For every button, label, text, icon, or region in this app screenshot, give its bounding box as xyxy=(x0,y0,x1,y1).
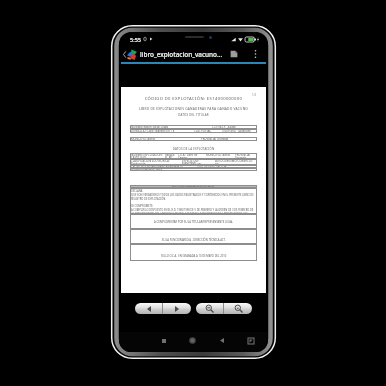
staticText: C.I.F./N.I.F. 44088 xyxy=(212,125,236,129)
button[interactable]: Home xyxy=(187,335,198,346)
button[interactable]: Recents xyxy=(158,335,169,346)
button[interactable]: Previous page xyxy=(135,303,162,314)
staticText: PROVINCIA: Granada xyxy=(201,137,229,141)
button[interactable]: More options xyxy=(244,47,267,61)
staticText: TELÉFONO 44880088 xyxy=(222,129,251,133)
staticText: SE COMPROMETE: xyxy=(131,204,154,208)
staticText: DATOS DEL TITULAR xyxy=(130,113,257,117)
staticText: PROVINCIA: Granada xyxy=(235,153,256,159)
button[interactable]: Back xyxy=(121,47,127,61)
staticText: COD. POSTAL 18640 xyxy=(194,129,220,133)
button[interactable]: Zoom out xyxy=(196,303,223,314)
staticText: PARAJE: EL RE xyxy=(165,153,175,159)
staticText: SELLO O.C.A. EN GRANADA A 10 DE MAYO DEL… xyxy=(161,254,227,258)
button[interactable]: Hide keyboard xyxy=(245,335,256,346)
staticText: TIPO DE EXPLOTACIÓN xyxy=(197,165,227,168)
staticText: A CUMPLIR LO DISPUESTO EN EL R.D. 1980/1… xyxy=(131,208,256,212)
staticText: REGISTRO DE EXPLOTACIÓN. xyxy=(131,197,166,201)
staticText: C.E.A.: Libro de Campo xyxy=(178,153,204,159)
staticText: DOMICILIO: Calle Talavera s/n, 18 xyxy=(131,129,175,133)
staticText: libro_explotacion_vacuno… xyxy=(140,50,226,59)
staticText: DECLARA: xyxy=(131,189,143,193)
staticText: CÓDIGO DE EXPLOTACIÓN: ES14000000000 xyxy=(130,96,257,102)
staticText: MUNICIPIO: Avello xyxy=(206,153,231,157)
button[interactable]: Print xyxy=(226,47,242,61)
staticText: A CUMPLIMENTAR POR EL/LA TITULAR/REPRESE… xyxy=(154,220,234,224)
button[interactable]: Next page xyxy=(163,303,191,314)
staticText: DATOS DE LA EXPLOTACIÓN xyxy=(130,147,257,151)
staticText: ESPECIE QUE MANTIENE: vac xyxy=(182,159,213,165)
staticText: NOMBRE EXPLOTACIÓN: CASTILLEJO xyxy=(131,153,163,159)
staticText: CLASIFICACIÓN ZOOTÉCNICA: Producción GAN… xyxy=(131,159,180,165)
staticText: LA CONSERVACIÓN DEL LIBRO DE GANADO, ASÍ… xyxy=(131,212,256,214)
button[interactable]: Back xyxy=(216,335,227,346)
staticText: QUE SON VERDADEROS TODOS LOS DATOS REGIS… xyxy=(131,193,254,197)
button[interactable]: Zoom in xyxy=(224,303,252,314)
staticText: AUTOCONSUMO/COMERCIO: no xyxy=(215,159,256,165)
staticText: LIBRO DE EXPLOTACIONES GANADERAS PARA GA… xyxy=(130,107,257,111)
staticText: 1/4 xyxy=(252,93,256,97)
staticText: 5:55 xyxy=(130,36,141,43)
staticText: MUNICIPIO: Avello xyxy=(131,137,156,141)
staticText: NOMBRE/Razón Social: JUAN xyxy=(131,125,168,129)
staticText: EL/LA TITULAR/REPRESENTANTE ABAJO xyxy=(172,185,215,188)
staticText: EL/LA FUNCIONARIO/A - DIRECCIÓN TÉCNICA … xyxy=(162,238,226,242)
staticText: Superficie/Medios: finca xyxy=(131,168,162,171)
staticText: CALIFICACIÓN SANITARIA: Acreditada OC xyxy=(131,165,185,168)
